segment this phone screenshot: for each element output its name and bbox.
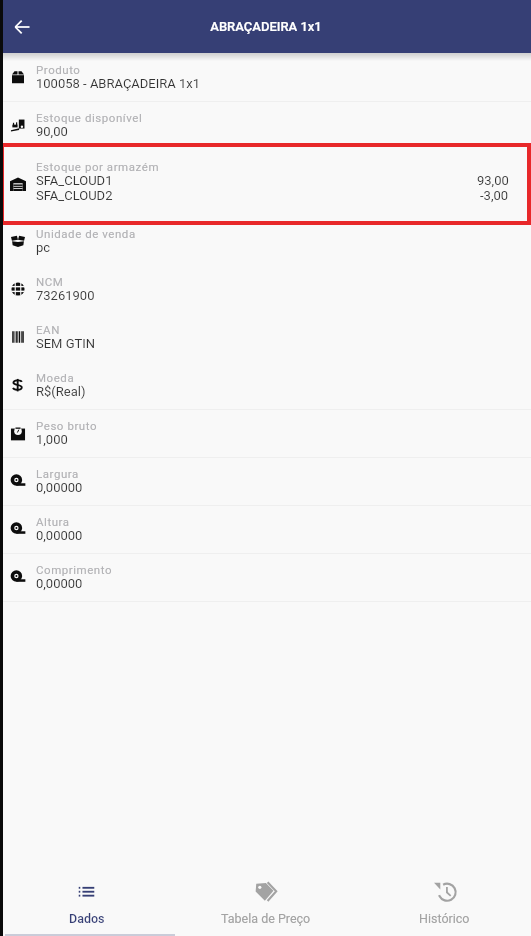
staticText: pc: [36, 240, 51, 255]
button[interactable]: Produto: [0, 53, 531, 101]
button[interactable]: Estoque disponível: [0, 101, 531, 149]
staticText: NCM: [36, 275, 64, 288]
staticText: Estoque por armazém: [36, 160, 160, 173]
staticText: Moeda: [36, 371, 75, 384]
staticText: ABRAÇADEIRA 1x1: [210, 19, 322, 34]
button[interactable]: Altura: [0, 505, 531, 553]
staticText: 0,00000: [36, 528, 83, 543]
button[interactable]: Histórico: [355, 866, 531, 936]
button[interactable]: Moeda: [0, 361, 531, 409]
button[interactable]: Dados: [0, 866, 176, 936]
staticText: Estoque disponível: [36, 111, 143, 124]
staticText: Peso bruto: [36, 419, 98, 432]
staticText: Dados: [69, 911, 105, 926]
button[interactable]: Back: [1, 6, 43, 48]
button[interactable]: Tabela de Preço: [176, 866, 355, 936]
staticText: -3,00: [480, 188, 509, 203]
staticText: 93,00: [477, 173, 509, 188]
staticText: Produto: [36, 63, 81, 76]
staticText: Comprimento: [36, 563, 113, 576]
staticText: SFA_CLOUD1: [36, 173, 477, 188]
staticText: Histórico: [419, 911, 470, 926]
button[interactable]: Peso bruto: [0, 409, 531, 457]
staticText: 73261900: [36, 288, 95, 303]
staticText: 100058 - ABRAÇADEIRA 1x1: [36, 76, 201, 91]
staticText: 0,00000: [36, 576, 83, 591]
staticText: 90,00: [36, 124, 68, 139]
staticText: Unidade de venda: [36, 227, 136, 240]
button[interactable]: Comprimento: [0, 553, 531, 601]
staticText: 1,000: [36, 432, 68, 447]
button[interactable]: NCM: [0, 265, 531, 313]
staticText: EAN: [36, 323, 60, 336]
button[interactable]: EAN: [0, 313, 531, 361]
staticText: R$(Real): [36, 384, 86, 399]
staticText: Altura: [36, 515, 70, 528]
staticText: Tabela de Preço: [221, 911, 311, 926]
button[interactable]: Largura: [0, 457, 531, 505]
staticText: SEM GTIN: [36, 336, 96, 351]
staticText: Largura: [36, 467, 79, 480]
staticText: SFA_CLOUD2: [36, 188, 480, 203]
button[interactable]: Estoque por armazém: [0, 149, 531, 217]
staticText: 0,00000: [36, 480, 83, 495]
button[interactable]: Unidade de venda: [0, 217, 531, 265]
